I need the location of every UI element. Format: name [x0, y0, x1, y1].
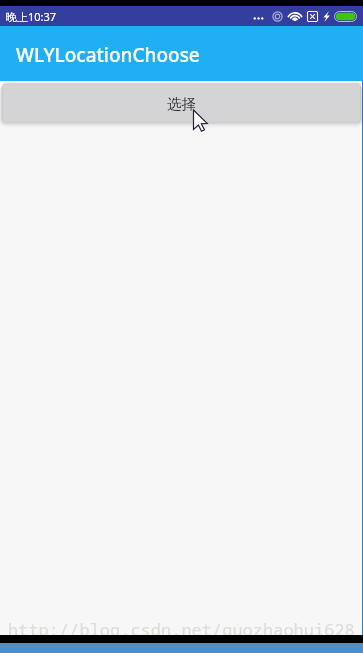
other: Charging — [323, 11, 330, 22]
other: Wi-Fi — [288, 11, 302, 22]
staticText: http://blog.csdn.net/guozhaohui628 — [8, 618, 355, 641]
staticText: WLYLocationChoose — [16, 42, 200, 68]
other: Battery full — [334, 11, 357, 22]
other: Alarm set — [272, 11, 283, 22]
other: More status icons — [253, 10, 264, 22]
button[interactable]: 选择 — [3, 83, 360, 122]
other: No SIM card — [307, 11, 318, 22]
staticText: 晚上10:37 — [6, 9, 57, 24]
staticText: 选择 — [167, 95, 196, 113]
